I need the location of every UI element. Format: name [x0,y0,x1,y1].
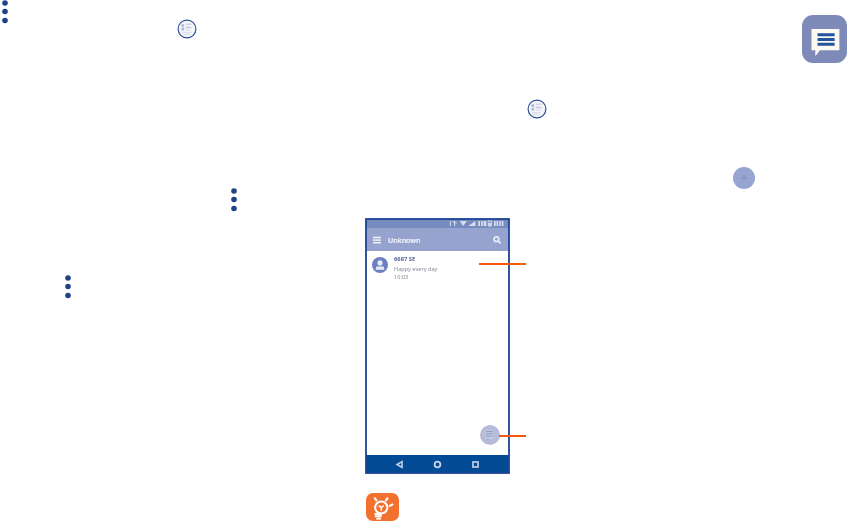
button[interactable]: Message list [177,19,197,39]
button[interactable]: 6687 SE [372,255,509,281]
staticText: Unknown [388,235,421,245]
button[interactable]: Message list [527,99,547,119]
staticText: Happy every day [394,265,438,273]
staticText: 10:03 [394,273,409,281]
button[interactable]: New message [480,425,500,445]
button[interactable]: Add [733,167,755,189]
button[interactable]: Messaging app [802,15,847,63]
button[interactable]: Tip [366,493,399,521]
button[interactable]: More options [63,274,73,300]
button[interactable]: More options [229,187,239,213]
button[interactable]: More options [0,0,10,25]
staticText: 6687 SE [394,255,416,263]
